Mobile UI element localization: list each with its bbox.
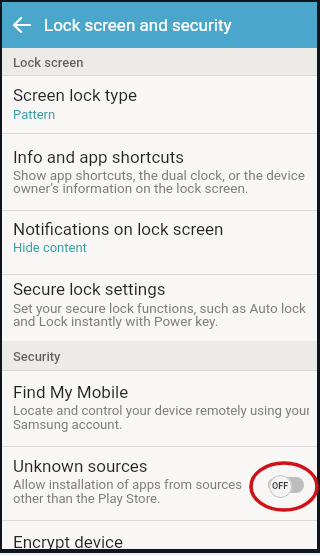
staticText: Allow installation of apps from sources … — [13, 477, 243, 506]
staticText: Unknown sources — [13, 456, 148, 476]
staticText: Find My Mobile — [13, 382, 129, 402]
button[interactable]: Encrypt device — [2, 521, 317, 549]
staticText: Secure lock settings — [13, 279, 166, 299]
button[interactable]: Info and app shortcuts — [2, 134, 317, 210]
button[interactable] — [2, 2, 42, 48]
staticText: Encrypt device — [13, 532, 124, 549]
staticText: Pattern — [13, 107, 56, 122]
staticText: Set your secure lock functions, such as … — [13, 300, 306, 329]
staticText: OFF — [272, 481, 289, 492]
button[interactable]: Notifications on lock screen — [2, 211, 317, 274]
staticText: Lock screen — [13, 55, 84, 70]
staticText: Screen lock type — [13, 85, 137, 105]
staticText: Security — [13, 349, 61, 364]
button[interactable]: Unknown sources — [2, 447, 317, 520]
staticText: Hide content — [13, 240, 87, 255]
button[interactable]: Secure lock settings — [2, 275, 317, 341]
staticText: Notifications on lock screen — [13, 219, 224, 239]
staticText: Info and app shortcuts — [13, 147, 185, 167]
staticText: Locate and control your device remotely … — [13, 403, 309, 432]
staticText: Lock screen and security — [44, 15, 232, 35]
staticText: Show app shortcuts, the dual clock, or t… — [13, 167, 305, 196]
button[interactable]: Find My Mobile — [2, 371, 317, 446]
button[interactable]: Screen lock type — [2, 76, 317, 133]
